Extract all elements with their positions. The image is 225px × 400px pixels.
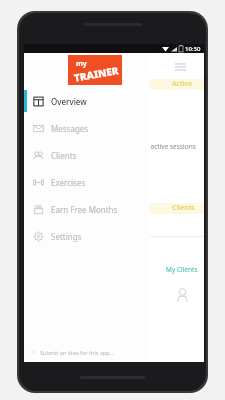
button[interactable]: Overview	[24, 87, 150, 114]
staticText: Clients Overview	[172, 203, 204, 214]
staticText: TRAINER	[73, 63, 119, 85]
staticText: Overview	[51, 96, 87, 107]
button[interactable]: Submit an idea for this app...	[24, 344, 150, 360]
staticText: Earn Free Months	[51, 204, 118, 215]
button[interactable]: Earn Free Months	[24, 195, 150, 222]
button[interactable]: Messages	[24, 114, 150, 141]
staticText: Active Sessions	[172, 79, 204, 90]
staticText: No active sessions	[140, 142, 196, 151]
staticText: 10:50	[185, 45, 201, 53]
button[interactable]: Exercises	[24, 168, 150, 195]
staticText: Messages	[51, 123, 89, 134]
staticText: Settings	[51, 231, 82, 242]
staticText: my	[76, 59, 87, 69]
button[interactable]: Open navigation menu	[172, 59, 188, 75]
staticText: Exercises	[51, 177, 86, 188]
button[interactable]: Clients	[24, 141, 150, 168]
staticText: My Clients	[166, 265, 198, 274]
button[interactable]: Settings	[24, 222, 150, 249]
staticText: Clients	[51, 150, 77, 161]
staticText: Submit an idea for this app...	[40, 349, 115, 356]
